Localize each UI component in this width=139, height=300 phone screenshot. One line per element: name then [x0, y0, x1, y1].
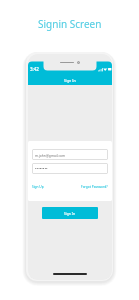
staticText: Signin Screen — [38, 17, 102, 31]
button[interactable]: •••••••• — [32, 163, 108, 174]
button[interactable]: Sign In — [42, 207, 98, 219]
staticText: •••••••• — [35, 166, 48, 172]
staticText: Sign In — [64, 78, 76, 83]
button[interactable]: m.john@gmail.com — [32, 149, 108, 160]
staticText: Sign In — [64, 211, 76, 216]
button[interactable]: Sign Up — [32, 185, 44, 189]
staticText: 3:42 — [30, 66, 39, 72]
staticText: m.john@gmail.com — [35, 153, 66, 157]
button[interactable]: Forgot Password? — [81, 185, 108, 189]
